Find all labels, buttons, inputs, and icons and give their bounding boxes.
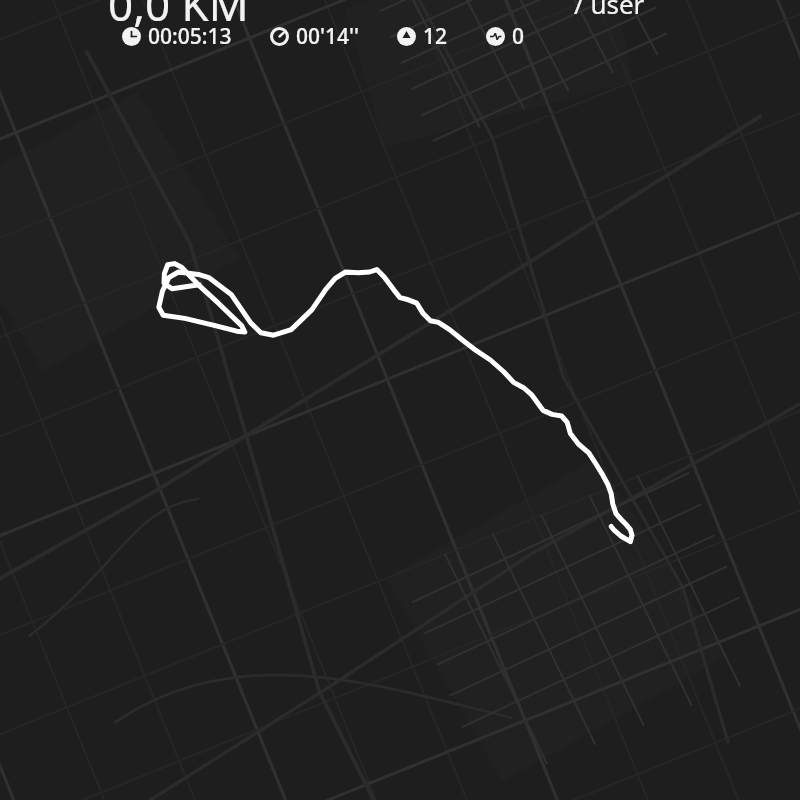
button[interactable]: Calories: [397, 22, 448, 51]
button[interactable]: / user: [574, 0, 645, 21]
staticText: 0,0 KM: [108, 0, 249, 34]
button[interactable]: Pace: [270, 22, 359, 51]
staticText: 00'14'': [296, 22, 359, 51]
staticText: 12: [423, 22, 448, 51]
button[interactable]: Heart rate: [486, 22, 525, 51]
staticText: / user: [574, 0, 645, 21]
staticText: 0: [512, 22, 525, 51]
staticText: 00:05:13: [148, 22, 232, 51]
button[interactable]: Duration: [122, 22, 232, 51]
button[interactable]: 0,0 KM: [108, 0, 249, 34]
